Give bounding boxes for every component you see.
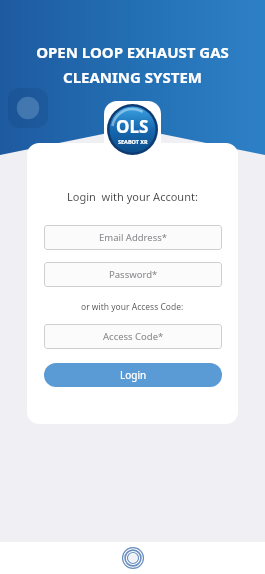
- button[interactable]: Email Address*: [44, 225, 222, 250]
- button[interactable]: Access Code*: [44, 324, 222, 349]
- staticText: or with your Access Code:: [81, 301, 184, 313]
- button[interactable]: Home: [122, 547, 144, 569]
- staticText: Email Address*: [99, 231, 168, 244]
- staticText: OPEN LOOP EXHAUST GAS: [36, 42, 229, 62]
- staticText: OLS: [116, 115, 149, 138]
- staticText: Login: [120, 368, 147, 382]
- button[interactable]: Password*: [44, 262, 222, 287]
- staticText: Access Code*: [103, 330, 164, 343]
- button[interactable]: Login: [44, 363, 222, 387]
- staticText: SEABOT XR: [118, 138, 148, 145]
- staticText: CLEANING SYSTEM: [63, 67, 202, 87]
- staticText: Login with your Account:: [67, 189, 198, 204]
- staticText: Password*: [109, 268, 158, 281]
